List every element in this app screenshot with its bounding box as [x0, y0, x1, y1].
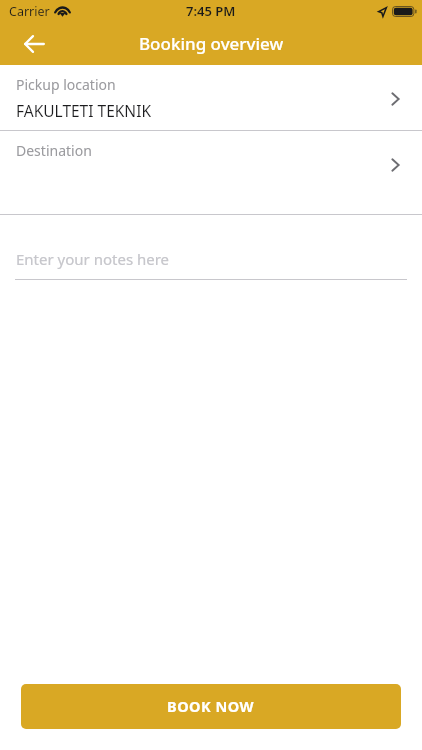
button[interactable]: Destination	[0, 131, 422, 215]
staticText: Booking overview	[139, 32, 284, 55]
button[interactable]: Enter your notes here	[15, 240, 407, 280]
staticText: 7:45 PM	[186, 2, 236, 20]
staticText: FAKULTETI TEKNIK	[16, 100, 151, 121]
staticText: BOOK NOW	[167, 696, 255, 716]
staticText: Enter your notes here	[16, 249, 170, 269]
button[interactable]: Back	[12, 22, 56, 65]
staticText: Pickup location	[16, 75, 116, 94]
button[interactable]: BOOK NOW	[21, 684, 401, 729]
staticText: Destination	[16, 141, 92, 160]
staticText: Carrier	[9, 3, 50, 20]
button[interactable]: Pickup location	[0, 65, 422, 131]
